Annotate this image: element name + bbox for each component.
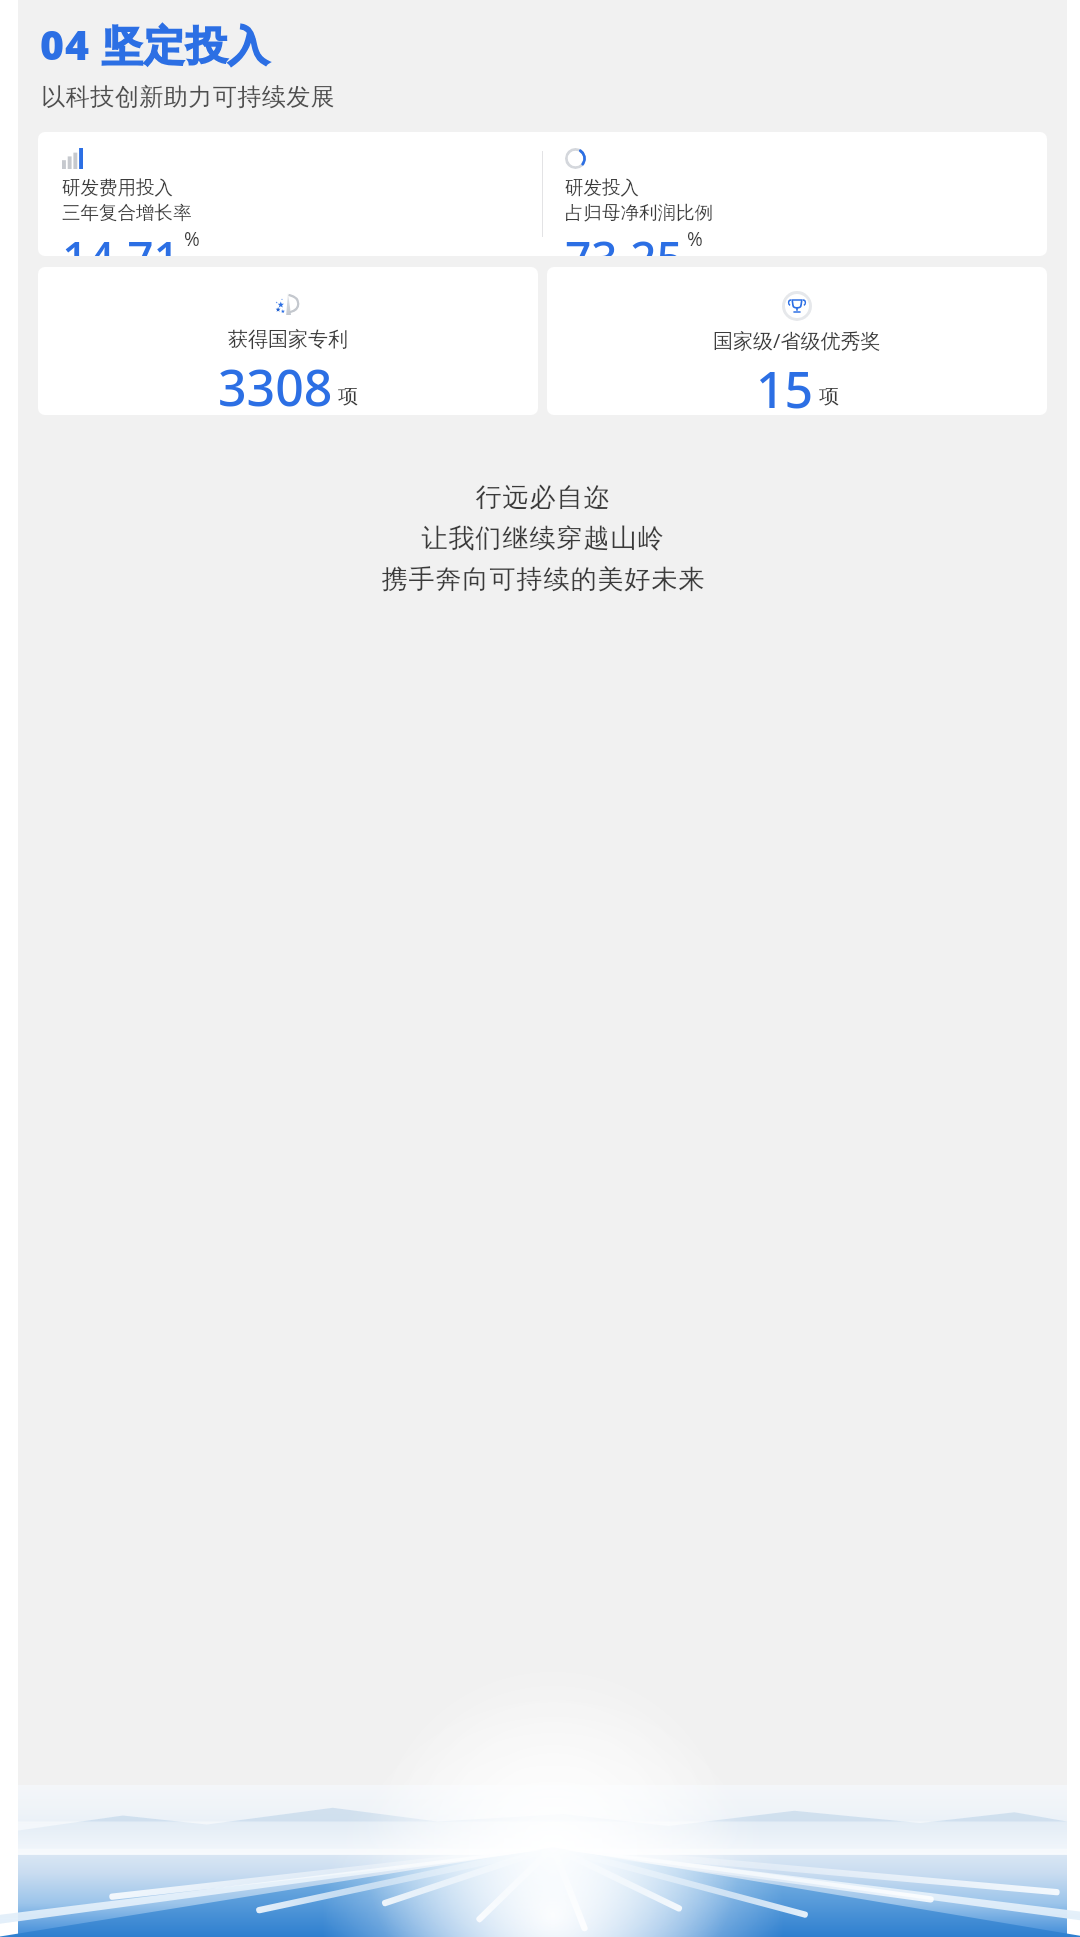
- other: Ratio ring: [565, 148, 586, 169]
- other: Awards: [782, 291, 812, 321]
- staticText: 三年复合增长率: [62, 201, 192, 224]
- staticText: 04 坚定投入: [40, 16, 270, 72]
- staticText: %: [184, 226, 200, 251]
- button[interactable]: 04 坚定投入: [40, 16, 270, 72]
- staticText: 国家级/省级优秀奖: [713, 327, 881, 354]
- staticText: 研发费用投入: [62, 176, 173, 199]
- staticText: 14.71: [62, 226, 180, 256]
- staticText: 获得国家专利: [228, 327, 348, 352]
- staticText: 73.25: [565, 226, 683, 256]
- staticText: 研发投入: [565, 176, 639, 199]
- staticText: 携手奔向可持续的美好未来: [381, 563, 705, 596]
- staticText: 项: [338, 384, 358, 409]
- other: Growth chart: [62, 148, 83, 169]
- button[interactable]: Growth chart: [38, 132, 1047, 256]
- staticText: 行远必自迩: [475, 481, 610, 514]
- staticText: %: [687, 226, 703, 251]
- staticText: 3308: [218, 353, 333, 415]
- staticText: 以科技创新助力可持续发展: [41, 82, 335, 112]
- staticText: 15: [756, 355, 814, 415]
- staticText: 项: [819, 384, 839, 409]
- other: Patents: [273, 291, 303, 321]
- staticText: 让我们继续穿越山岭: [421, 522, 664, 555]
- button[interactable]: Patents: [38, 267, 538, 415]
- staticText: 占归母净利润比例: [565, 201, 713, 224]
- button[interactable]: Awards: [547, 267, 1047, 415]
